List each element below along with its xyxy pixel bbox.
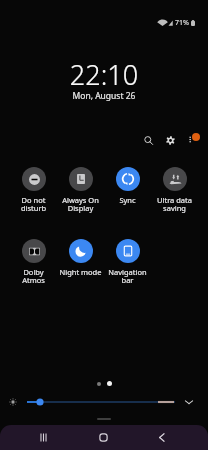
staticText: Always On Display bbox=[57, 195, 104, 213]
button[interactable]: Settings bbox=[159, 129, 181, 151]
button[interactable]: Back bbox=[148, 427, 174, 448]
button[interactable]: Recents bbox=[30, 427, 57, 448]
button[interactable]: Always On Display bbox=[57, 167, 104, 213]
button[interactable]: Ultra data saving bbox=[151, 167, 198, 213]
staticText: Mon, August 26 bbox=[0, 90, 208, 102]
staticText: Navigation bar bbox=[104, 267, 151, 285]
button[interactable]: Expand brightness options bbox=[182, 395, 196, 409]
staticText: Ultra data saving bbox=[151, 195, 198, 213]
button[interactable]: Home bbox=[90, 427, 116, 448]
staticText: Dolby Atmos bbox=[10, 267, 57, 285]
button[interactable]: Navigation bar bbox=[104, 239, 151, 285]
button[interactable]: Dolby Atmos bbox=[10, 239, 57, 285]
staticText: Sync bbox=[104, 195, 151, 205]
button[interactable]: More options bbox=[181, 129, 203, 151]
staticText: Night mode bbox=[57, 267, 104, 277]
button[interactable]: Do not disturb bbox=[10, 167, 57, 213]
staticText: Do not disturb bbox=[10, 195, 57, 213]
staticText: 22:10 bbox=[0, 56, 208, 93]
button[interactable]: Sync bbox=[104, 167, 151, 205]
button[interactable]: Night mode bbox=[57, 239, 104, 277]
staticText: 71% bbox=[175, 18, 189, 28]
button[interactable]: Search bbox=[137, 129, 159, 151]
